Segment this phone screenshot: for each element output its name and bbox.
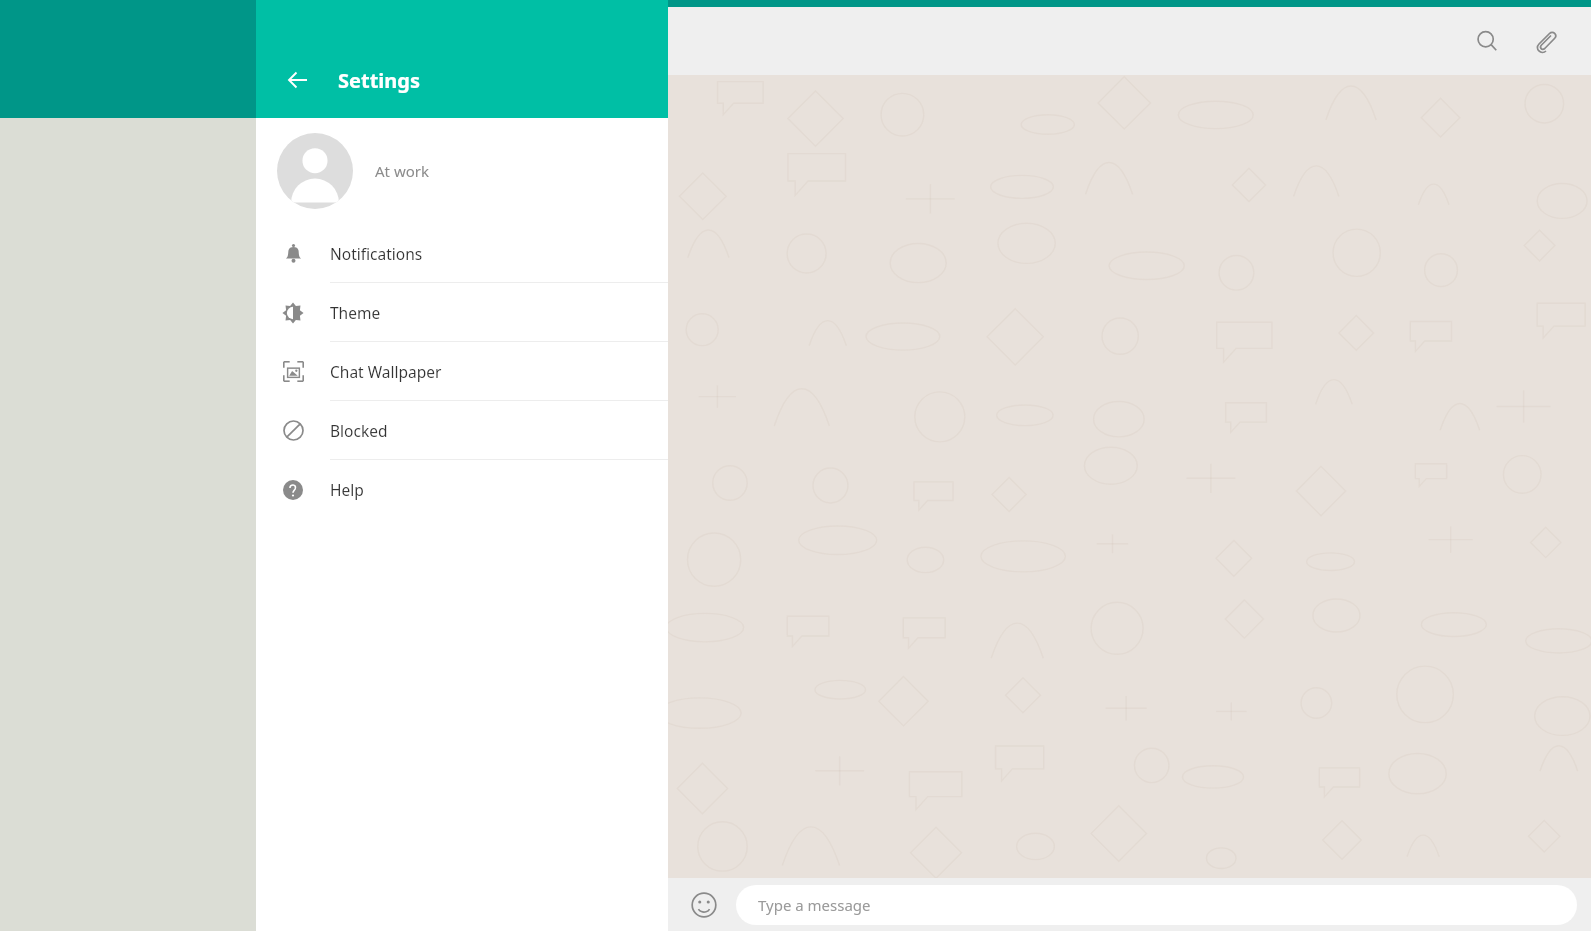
staticText: At work <box>375 161 429 181</box>
button[interactable]: Chat Wallpaper <box>256 342 668 401</box>
button[interactable]: At work <box>256 118 668 224</box>
button[interactable]: Blocked <box>256 401 668 460</box>
button[interactable]: Back <box>278 60 318 100</box>
button[interactable]: Emoji <box>686 887 722 923</box>
button[interactable]: Notifications <box>256 224 668 283</box>
staticText: Settings <box>338 67 420 94</box>
button[interactable]: Search <box>1465 19 1509 63</box>
staticText: Chat Wallpaper <box>330 361 442 382</box>
staticText: Blocked <box>330 420 388 441</box>
button[interactable]: Attach <box>1523 19 1567 63</box>
staticText: Theme <box>330 302 381 323</box>
button[interactable]: Type a message <box>736 885 1577 925</box>
staticText: Help <box>330 479 364 500</box>
staticText: Notifications <box>330 243 423 264</box>
button[interactable]: Theme <box>256 283 668 342</box>
staticText: Type a message <box>758 895 871 915</box>
button[interactable]: Help <box>256 460 668 519</box>
